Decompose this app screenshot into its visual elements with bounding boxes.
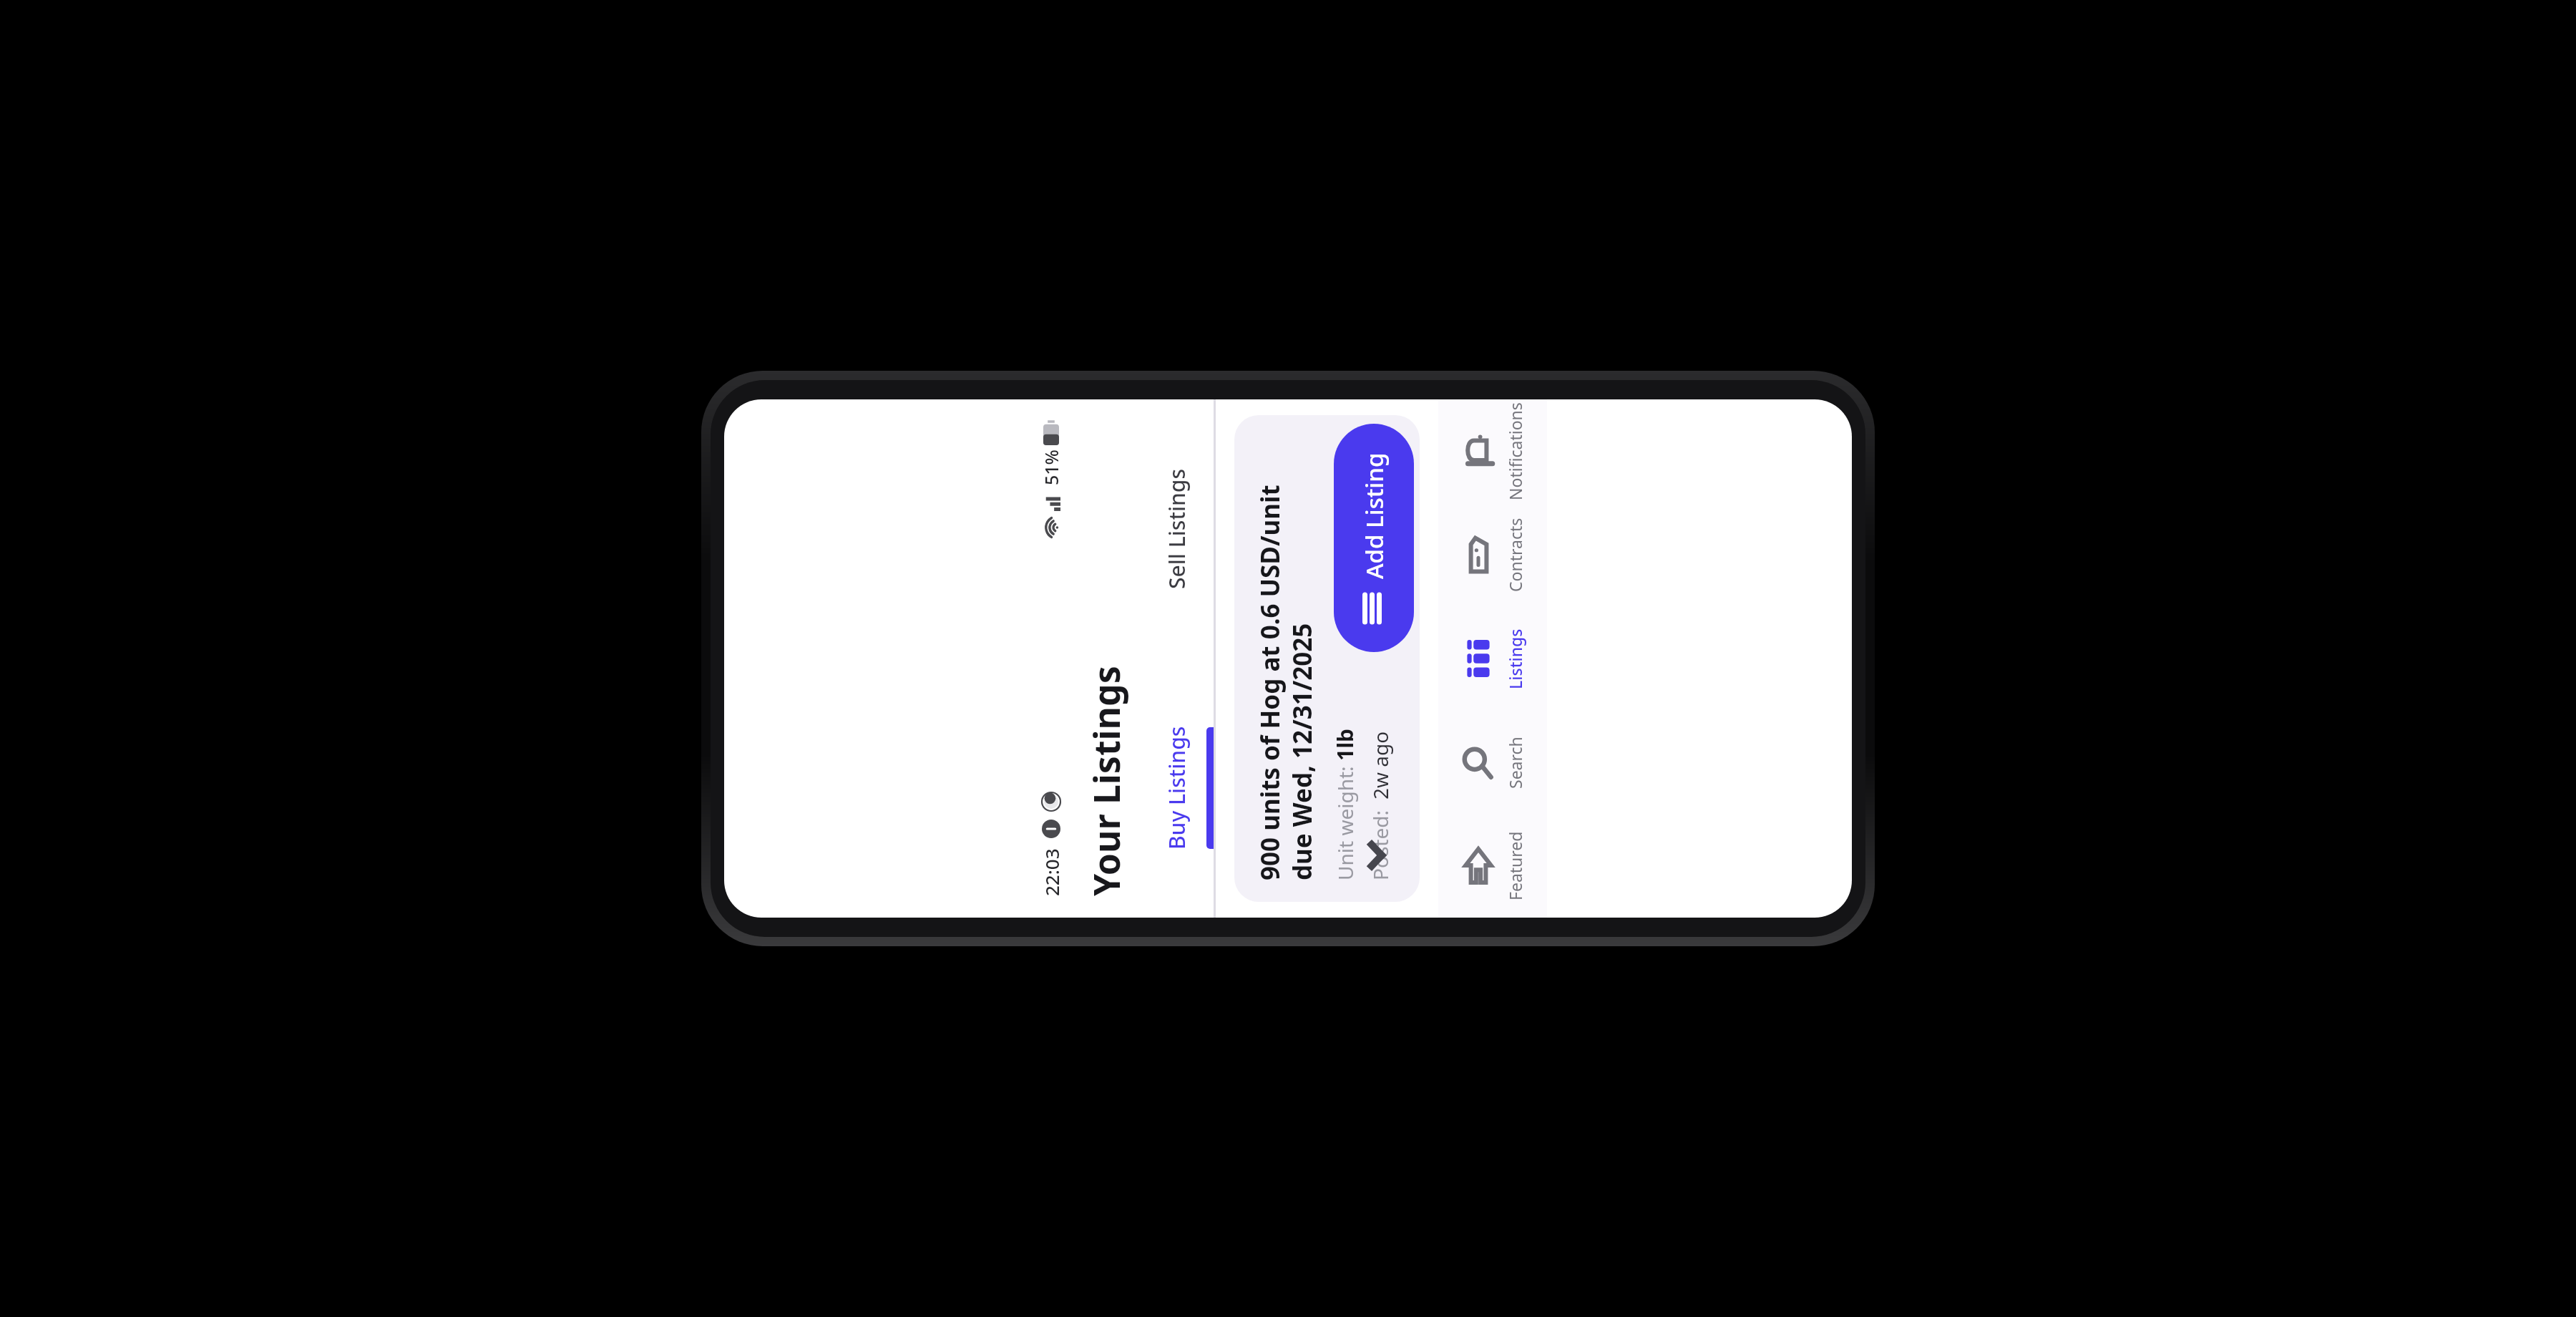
button[interactable]: Buy Listings	[1139, 658, 1214, 918]
staticText: Notifications	[1504, 402, 1526, 500]
button[interactable]: 900 units of Hog at 0.6 USD/unit due Wed…	[1234, 415, 1420, 902]
staticText: Listings	[1504, 628, 1526, 689]
button[interactable]: Notifications	[1438, 399, 1547, 503]
staticText: Buy Listings	[1162, 726, 1191, 850]
staticText: 2w ago	[1367, 731, 1394, 800]
button[interactable]: Search	[1438, 711, 1547, 815]
staticText: 51%	[1039, 449, 1063, 485]
button[interactable]: Contracts	[1438, 503, 1547, 607]
staticText: Add Listing	[1358, 452, 1390, 579]
staticText: Your Listings	[1082, 666, 1131, 896]
staticText: Posted:	[1367, 800, 1394, 880]
staticText: Sell Listings	[1162, 469, 1191, 589]
button[interactable]: Sell Listings	[1139, 399, 1214, 658]
button[interactable]: Featured	[1438, 815, 1547, 918]
staticText: 900 units of Hog at 0.6 USD/unit due Wed…	[1253, 437, 1319, 880]
staticText: Contracts	[1504, 517, 1526, 592]
staticText: Search	[1504, 737, 1526, 789]
button[interactable]: Listings	[1438, 607, 1547, 711]
button[interactable]: Expand listing	[1351, 830, 1401, 880]
staticText: 1lb	[1330, 728, 1360, 761]
staticText: Unit weight:	[1332, 761, 1359, 880]
staticText: Featured	[1504, 831, 1526, 900]
staticText: 22:03	[1039, 848, 1064, 896]
button[interactable]: Add Listing	[1334, 424, 1414, 652]
